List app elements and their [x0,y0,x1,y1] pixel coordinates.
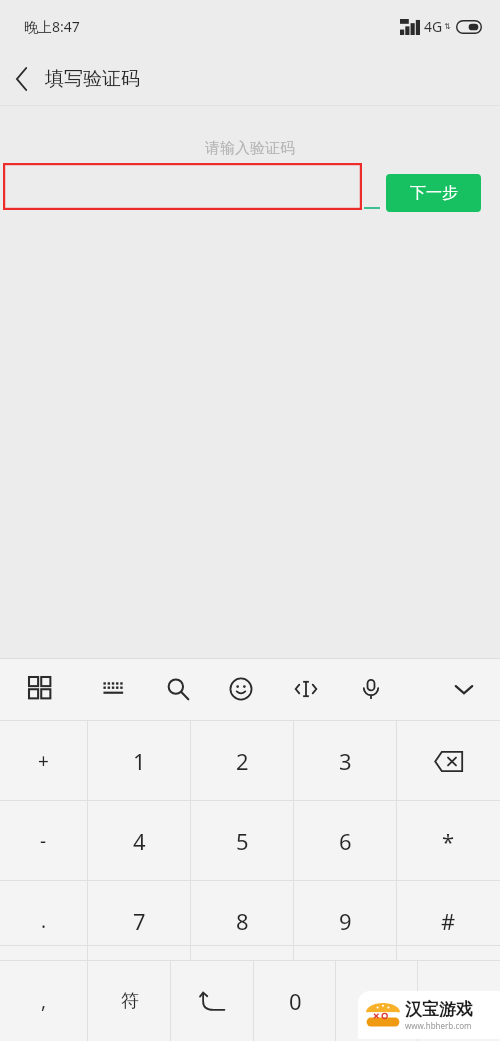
button[interactable]: - [0,801,87,881]
staticText: 下一步 [410,183,458,203]
staticText: - [40,828,47,854]
button[interactable]: 1 [88,721,191,801]
button[interactable]: Keyboard layout [92,667,136,711]
staticText: 完成 [441,990,477,1013]
staticText: . [41,908,47,934]
button[interactable]: . [0,881,87,961]
button[interactable]: 3 [294,721,397,801]
staticText: 1 [133,746,146,776]
button[interactable]: Voice input [349,667,393,711]
button[interactable]: Search [156,667,200,711]
staticText: 6 [339,826,352,856]
button[interactable]: 8 [191,881,294,961]
button[interactable]: Back [0,57,44,101]
button[interactable]: 5 [191,801,294,881]
button[interactable]: # [397,881,500,961]
staticText: + [38,748,49,774]
staticText: 4 [133,826,146,856]
staticText: ⇅ [444,22,451,31]
button[interactable]: Backspace [397,721,500,801]
staticText: 2 [236,746,249,776]
button[interactable]: 完成 [418,961,500,1041]
button[interactable]: , [0,961,87,1041]
staticText: 5 [236,826,249,856]
staticText: * [442,826,455,856]
staticText: 8 [236,906,249,936]
button[interactable]: Space [336,961,418,1041]
button[interactable]: 9 [294,881,397,961]
staticText: 请输入验证码 [205,139,295,158]
button[interactable]: 6 [294,801,397,881]
staticText: 4G [424,17,443,36]
staticText: , [41,988,47,1014]
button[interactable]: 符 [88,961,171,1041]
button[interactable]: 4 [88,801,191,881]
staticText: # [441,906,456,936]
button[interactable]: 7 [88,881,191,961]
staticText: 填写验证码 [45,67,140,91]
staticText: 汉宝游戏 [405,999,473,1020]
button[interactable]: 0 [254,961,336,1041]
staticText: 晚上8:47 [24,17,80,36]
button[interactable]: Hide keyboard [442,667,486,711]
staticText: 7 [133,906,146,936]
button[interactable]: 2 [191,721,294,801]
button[interactable]: 下一步 [386,174,481,212]
button[interactable] [3,163,362,210]
staticText: 9 [339,906,352,936]
button[interactable]: * [397,801,500,881]
staticText: 符 [121,990,139,1013]
button[interactable]: + [0,721,87,801]
button[interactable]: Enter [171,961,254,1041]
button[interactable]: Emoji [219,667,263,711]
staticText: 3 [339,746,352,776]
staticText: 0 [289,986,302,1016]
staticText: www.hbherb.com [405,1020,472,1031]
button[interactable]: Keyboard grid [19,667,63,711]
button[interactable]: Move cursor [284,667,328,711]
